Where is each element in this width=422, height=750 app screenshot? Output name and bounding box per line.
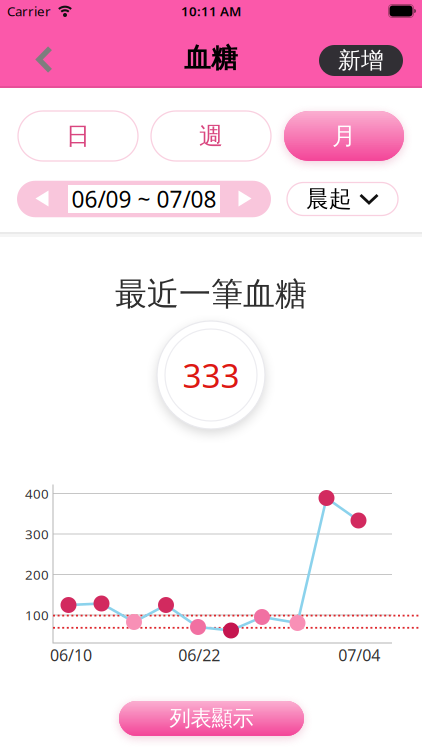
staticText: 晨起 — [306, 185, 352, 213]
staticText: 週 — [199, 121, 223, 151]
staticText: 333 — [182, 353, 239, 397]
staticText: 300 — [25, 525, 49, 543]
staticText: 最近一筆血糖 — [115, 274, 307, 314]
staticText: 月 — [332, 121, 356, 151]
button[interactable]: Back — [36, 46, 52, 73]
staticText: 日 — [66, 121, 90, 151]
button[interactable]: 新增 — [319, 45, 403, 76]
staticText: 07/04 — [338, 644, 380, 666]
staticText: 200 — [25, 566, 49, 583]
staticText: 06/22 — [178, 644, 220, 666]
staticText: Carrier — [7, 2, 51, 20]
button[interactable]: Next period — [238, 190, 252, 207]
staticText: 06/10 — [50, 644, 92, 666]
button[interactable]: 日 — [18, 111, 138, 161]
button[interactable]: 列表顯示 — [119, 701, 304, 736]
staticText: 100 — [25, 606, 49, 624]
button[interactable]: 週 — [151, 111, 271, 161]
staticText: 10:11 AM — [181, 2, 241, 20]
staticText: 血糖 — [184, 42, 238, 74]
staticText: 列表顯示 — [169, 705, 253, 732]
button[interactable]: 月 — [284, 111, 404, 161]
staticText: 06/09 ~ 07/08 — [71, 184, 216, 214]
staticText: 新增 — [338, 47, 384, 74]
button[interactable]: Previous period — [35, 190, 49, 207]
button[interactable]: 晨起 — [287, 182, 398, 215]
staticText: 400 — [25, 485, 49, 502]
